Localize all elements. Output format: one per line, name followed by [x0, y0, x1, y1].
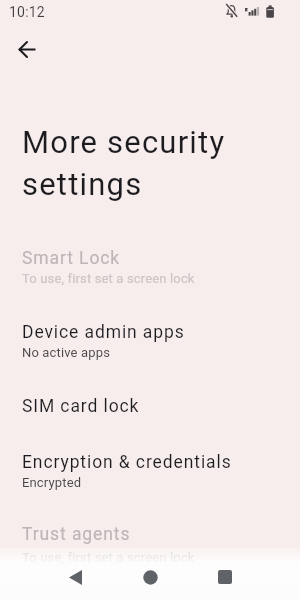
staticText: To use, first set a screen lock — [22, 271, 195, 286]
staticText: SIM card lock — [22, 396, 140, 417]
button[interactable]: Trust agents — [0, 507, 300, 581]
staticText: 10:12 — [9, 4, 45, 20]
staticText: No active apps — [22, 345, 111, 360]
staticText: More security settings — [22, 124, 226, 203]
button[interactable]: Device admin apps — [0, 304, 300, 378]
staticText: Device admin apps — [22, 322, 185, 343]
button[interactable] — [51, 551, 99, 600]
staticText: To use, first set a screen lock — [22, 550, 195, 565]
button[interactable] — [3, 25, 51, 73]
staticText: Trust agents — [22, 524, 131, 545]
staticText: Smart Lock — [22, 248, 121, 269]
button[interactable] — [201, 551, 249, 600]
button[interactable] — [126, 551, 174, 600]
button[interactable]: Encryption & credentials — [0, 434, 300, 507]
staticText: Encrypted — [22, 475, 82, 490]
button[interactable]: SIM card lock — [0, 378, 300, 434]
button[interactable]: Smart Lock — [0, 229, 300, 304]
staticText: Encryption & credentials — [22, 452, 232, 473]
